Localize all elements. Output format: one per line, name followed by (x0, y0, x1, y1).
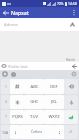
button[interactable]: TUV (24, 110, 44, 124)
staticText: 14:58 (68, 1, 77, 6)
staticText: GHI (30, 99, 38, 105)
button[interactable]: 7 (1, 110, 10, 124)
button[interactable]: Send (70, 62, 79, 70)
button[interactable]: DEF (44, 79, 64, 94)
button[interactable]: PQRS (10, 110, 24, 124)
staticText: ⏎ (69, 130, 73, 134)
button[interactable]: dot (10, 125, 20, 139)
button[interactable]: ret (64, 125, 78, 139)
staticText: 1 (5, 85, 7, 89)
button[interactable]: mic (64, 95, 78, 109)
button[interactable]: back (64, 79, 78, 94)
button[interactable]: dot2 (54, 125, 64, 139)
staticText: 7 (5, 115, 7, 119)
staticText: PQRS (12, 114, 23, 120)
button[interactable]: star (10, 95, 24, 109)
staticText: Vložte text (8, 64, 70, 69)
button[interactable]: Clipboard (1, 70, 9, 78)
button[interactable]: 1 (1, 79, 10, 94)
button[interactable]: space (20, 125, 54, 139)
staticText: Návrh (66, 58, 76, 62)
button[interactable]: WXYZ (44, 110, 64, 124)
staticText: 12# (2, 130, 9, 135)
staticText: Adresa (4, 22, 18, 28)
button[interactable]: 4 (1, 95, 10, 109)
button[interactable]: Add contact (67, 19, 78, 30)
staticText: 4 (5, 100, 7, 104)
button[interactable]: GHI (24, 95, 44, 109)
button[interactable]: num (1, 125, 10, 139)
button[interactable]: ABC (24, 79, 44, 94)
button[interactable]: JKL (44, 95, 64, 109)
staticText: TUV (30, 114, 38, 120)
button[interactable]: More options (68, 7, 79, 18)
staticText: WXYZ (48, 114, 60, 120)
staticText: JKL (51, 99, 57, 105)
staticText: ABC (30, 84, 39, 90)
button[interactable]: Settings (70, 70, 78, 78)
staticText: DEF (50, 84, 58, 90)
staticText: Čeština (31, 130, 43, 134)
staticText: Napsat (11, 9, 29, 16)
button[interactable]: Emoji (9, 70, 17, 78)
button[interactable]: Attach (0, 62, 8, 70)
button[interactable]: hash (10, 79, 24, 94)
button[interactable]: Back (0, 7, 11, 18)
button[interactable]: enter (64, 110, 78, 124)
staticText: 70% (57, 2, 64, 6)
